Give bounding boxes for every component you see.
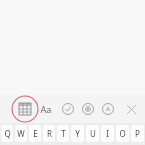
staticText: Y <box>75 128 80 139</box>
staticText: W <box>17 128 25 139</box>
staticText: Aa <box>40 103 52 115</box>
button[interactable]: W <box>15 125 27 142</box>
button[interactable]: Q <box>1 125 13 142</box>
staticText: U <box>90 128 96 139</box>
button[interactable]: E <box>29 125 41 142</box>
button[interactable]: I <box>101 125 114 142</box>
staticText: T <box>61 128 66 139</box>
staticText: E <box>33 128 38 139</box>
button[interactable]: Checklist <box>57 98 79 120</box>
button[interactable]: Insert table <box>14 98 36 120</box>
button[interactable]: Aa <box>35 98 57 120</box>
staticText: Q <box>4 128 11 139</box>
button[interactable]: O <box>116 125 129 142</box>
staticText: I <box>106 128 109 139</box>
staticText: O <box>119 128 126 139</box>
staticText: P <box>135 128 140 139</box>
button[interactable]: Insert media <box>77 98 99 120</box>
button[interactable]: R <box>43 125 55 142</box>
button[interactable]: T <box>57 125 69 142</box>
button[interactable]: Markup <box>97 98 119 120</box>
button[interactable]: P <box>131 125 144 142</box>
button[interactable]: U <box>86 125 99 142</box>
staticText: R <box>47 128 52 139</box>
button[interactable]: Y <box>71 125 84 142</box>
button[interactable]: Close <box>120 98 142 120</box>
staticText: A <box>106 105 110 113</box>
